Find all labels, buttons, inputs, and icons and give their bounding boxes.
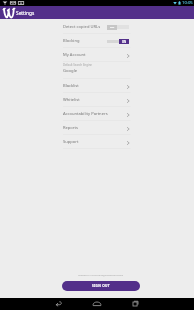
staticText: Accountability Partners [63, 111, 108, 117]
staticText: Google [63, 68, 78, 74]
staticText: ON [122, 40, 127, 44]
button[interactable]: Home [78, 298, 116, 310]
button[interactable]: Accountability Partners [0, 107, 194, 121]
staticText: Support [63, 139, 79, 145]
staticText: SIGN OUT [92, 284, 110, 288]
button[interactable]: Blacklist [0, 79, 194, 93]
button[interactable]: Recents [116, 298, 154, 310]
button[interactable]: SIGN OUT [62, 281, 140, 291]
button[interactable]: My Account [0, 48, 194, 62]
staticText: Blocking [63, 38, 80, 44]
button[interactable]: Reports [0, 121, 194, 135]
button[interactable]: Blocking [0, 34, 194, 48]
button[interactable]: Detect copied URLs [0, 20, 194, 34]
staticText: Blacklist [63, 83, 79, 89]
button[interactable]: Back [40, 298, 78, 310]
staticText: Default Search Engine [63, 63, 92, 67]
staticText: LOGGED IN AS EXAMPLE@SOMETHING.COM [78, 274, 124, 277]
button[interactable]: Default Search Engine [0, 62, 194, 79]
button[interactable]: Support [0, 135, 194, 149]
staticText: Reports [63, 125, 78, 131]
staticText: OFF [110, 26, 115, 29]
staticText: Settings [16, 10, 35, 17]
staticText: 10:05 [182, 0, 193, 6]
button[interactable]: Whitelist [0, 93, 194, 107]
staticText: Detect copied URLs [63, 24, 101, 30]
staticText: Whitelist [63, 97, 80, 103]
staticText: My Account [63, 52, 86, 58]
